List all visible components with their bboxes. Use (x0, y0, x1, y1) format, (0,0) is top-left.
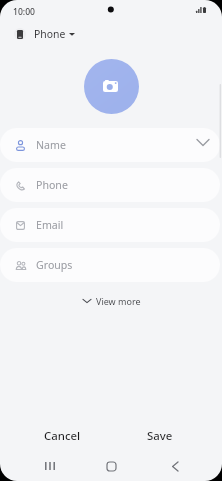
button[interactable]: Back (160, 453, 189, 479)
button[interactable]: Recents (35, 453, 64, 479)
staticText: Phone (34, 27, 66, 41)
staticText: Groups (36, 258, 73, 272)
button[interactable]: Name (0, 128, 220, 162)
staticText: Phone (36, 178, 68, 192)
button[interactable]: Home (97, 453, 126, 479)
button[interactable]: Cancel (36, 425, 89, 447)
staticText: Save (147, 428, 173, 444)
button[interactable]: Groups (0, 248, 220, 282)
button[interactable]: Phone (0, 168, 220, 202)
button[interactable]: View more (76, 292, 147, 310)
staticText: Name (36, 138, 66, 152)
staticText: Cancel (44, 428, 81, 444)
button[interactable]: Email (0, 208, 220, 242)
button[interactable]: Add photo (84, 59, 139, 114)
staticText: 10:00 (13, 6, 36, 18)
button[interactable]: Save (136, 425, 183, 447)
staticText: View more (96, 295, 141, 307)
button[interactable]: Account icon (14, 28, 26, 40)
staticText: Email (36, 218, 64, 232)
